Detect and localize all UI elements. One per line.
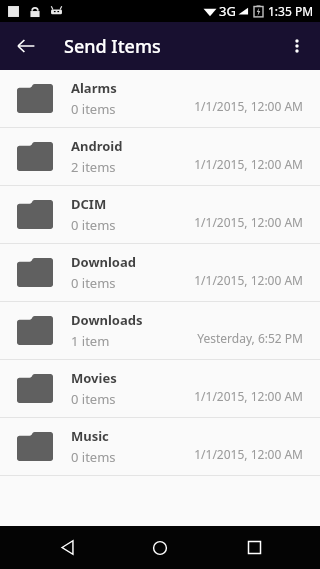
staticText: 1 item [71,332,110,350]
staticText: DCIM [71,195,107,213]
button[interactable]: Download [0,244,320,301]
button[interactable]: Alarms [0,70,320,127]
staticText: 1:35 PM [268,3,314,19]
button[interactable]: Android [0,128,320,185]
staticText: 3G [219,2,236,20]
staticText: Movies [71,369,117,387]
button[interactable]: DCIM [0,186,320,243]
staticText: 1/1/2015, 12:00 AM [194,446,303,462]
staticText: 1/1/2015, 12:00 AM [194,272,303,288]
staticText: Downloads [71,311,143,329]
staticText: 1/1/2015, 12:00 AM [194,214,303,230]
button[interactable]: Movies [0,360,320,417]
staticText: Music [71,427,109,445]
staticText: 0 items [71,100,116,118]
staticText: 2 items [71,158,116,176]
staticText: Download [71,253,136,271]
button[interactable]: More options [278,27,316,65]
staticText: 0 items [71,274,116,292]
staticText: 1/1/2015, 12:00 AM [194,98,303,114]
staticText: 0 items [71,448,116,466]
button[interactable]: Recents [227,526,281,569]
button[interactable]: Downloads [0,302,320,359]
staticText: 0 items [71,390,116,408]
staticText: 0 items [71,216,116,234]
button[interactable]: Music [0,418,320,475]
button[interactable]: Back [40,526,94,569]
staticText: Android [71,137,123,155]
staticText: 1/1/2015, 12:00 AM [194,156,303,172]
staticText: Alarms [71,79,117,97]
button[interactable]: Back [8,28,44,64]
staticText: Send Items [64,34,161,59]
button[interactable]: Home [133,526,187,569]
staticText: Yesterday, 6:52 PM [197,330,303,346]
staticText: 1/1/2015, 12:00 AM [194,388,303,404]
